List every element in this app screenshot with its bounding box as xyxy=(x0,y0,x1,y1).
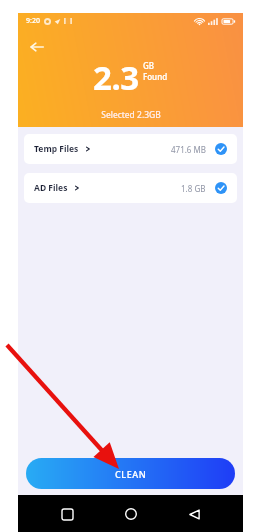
staticText: 9:20 xyxy=(26,16,40,26)
button[interactable]: Selected Temp Files xyxy=(215,143,227,155)
staticText: 471.6 MB xyxy=(171,144,206,155)
button[interactable]: Selected AD Files xyxy=(215,182,227,194)
staticText: GB xyxy=(143,60,155,71)
button[interactable]: Recents xyxy=(52,499,82,529)
staticText: 1.8 GB xyxy=(181,183,206,194)
staticText: Temp Files xyxy=(34,143,79,155)
button[interactable]: Home xyxy=(116,499,146,529)
button[interactable]: Back xyxy=(24,34,50,60)
button[interactable]: CLEAN xyxy=(26,458,235,489)
button[interactable]: Back xyxy=(179,499,209,529)
staticText: Selected 2.3GB xyxy=(101,109,161,121)
staticText: AD Files xyxy=(34,182,68,194)
staticText: CLEAN xyxy=(115,468,147,480)
button[interactable]: AD Files xyxy=(24,173,237,203)
staticText: Found xyxy=(143,71,168,82)
staticText: 2.3 xyxy=(93,55,139,100)
button[interactable]: Temp Files xyxy=(24,134,237,164)
